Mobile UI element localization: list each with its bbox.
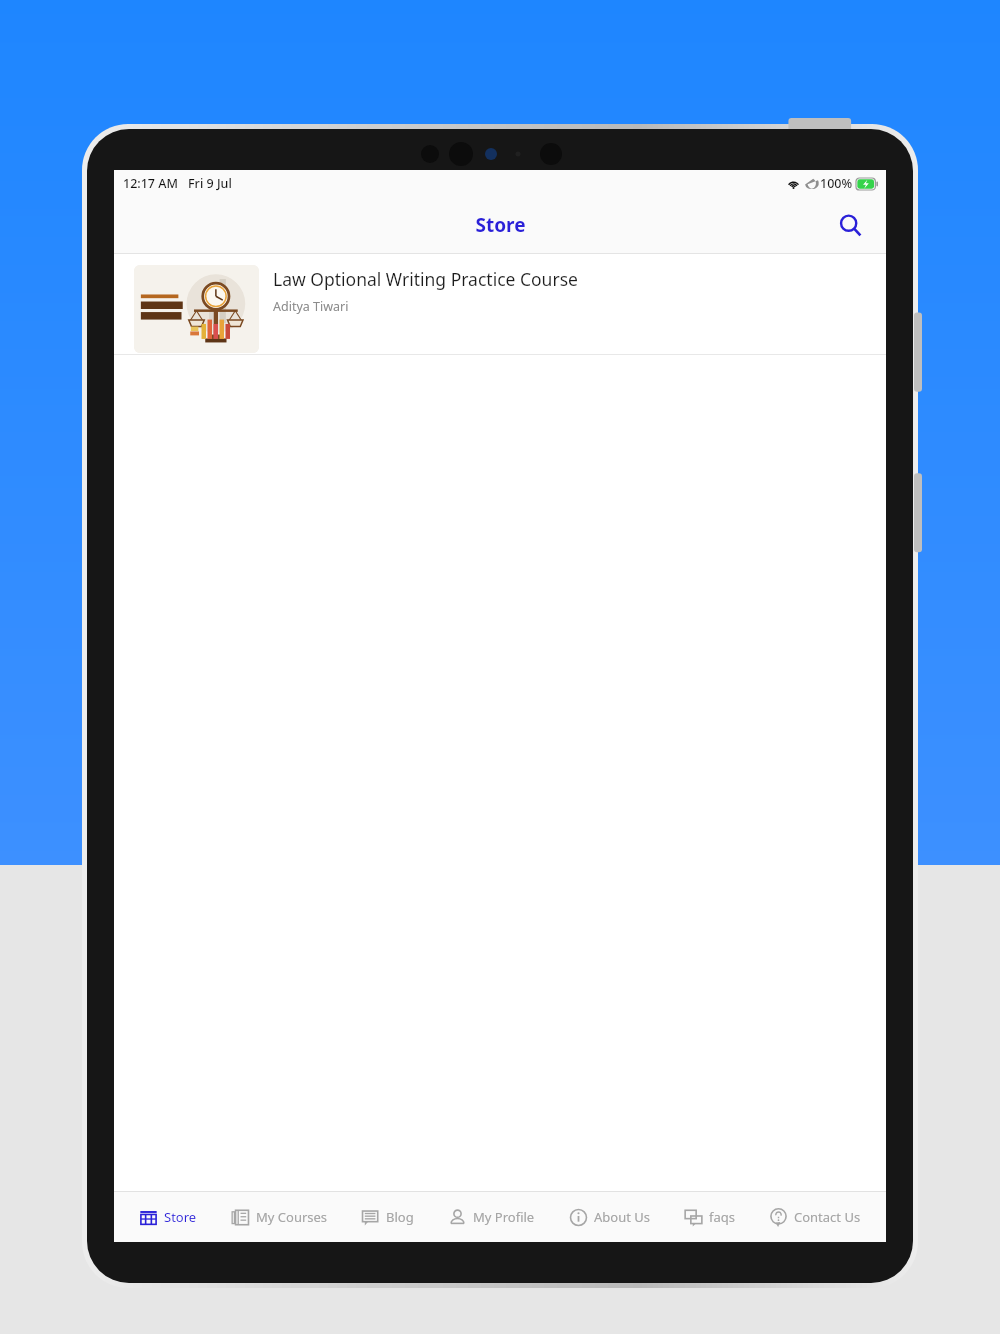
button[interactable]: Store (134, 1192, 202, 1242)
staticText: Aditya Tiwari (273, 298, 349, 315)
staticText: 12:17 AM (123, 175, 178, 192)
staticText: Store (475, 212, 526, 238)
staticText: Law Optional Writing Practice Course (273, 267, 578, 291)
button[interactable]: About Us (564, 1192, 656, 1242)
staticText: Fri 9 Jul (188, 175, 232, 192)
button[interactable]: My Courses (226, 1192, 333, 1242)
button[interactable]: faqs (679, 1192, 740, 1242)
staticText: Blog (386, 1208, 414, 1226)
button[interactable]: Search (828, 203, 872, 247)
button[interactable]: Law Optional Writing Practice Course (114, 254, 886, 354)
staticText: Store (164, 1208, 197, 1226)
staticText: My Courses (256, 1208, 328, 1226)
staticText: My Profile (473, 1208, 535, 1226)
button[interactable]: Contact Us (764, 1192, 866, 1242)
button[interactable]: Blog (356, 1192, 419, 1242)
button[interactable]: My Profile (443, 1192, 540, 1242)
staticText: faqs (709, 1208, 735, 1226)
staticText: Contact Us (794, 1208, 861, 1226)
staticText: 100% (820, 175, 853, 192)
staticText: About Us (594, 1208, 651, 1226)
